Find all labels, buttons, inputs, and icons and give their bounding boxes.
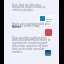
staticText: report.docx xyxy=(46,17,54,22)
staticText: Once you have gathered the data it becom… xyxy=(12,36,52,54)
button[interactable]: Image attachment xyxy=(45,50,51,56)
button[interactable]: PDF attachment xyxy=(45,29,52,36)
staticText: Sure, here are the most important points… xyxy=(12,3,52,12)
button[interactable]: Document attachment xyxy=(38,15,54,22)
staticText: Notes xyxy=(12,25,22,29)
other: Document attachment xyxy=(40,16,45,21)
staticText: Here is the summary table you asked for … xyxy=(12,22,50,28)
